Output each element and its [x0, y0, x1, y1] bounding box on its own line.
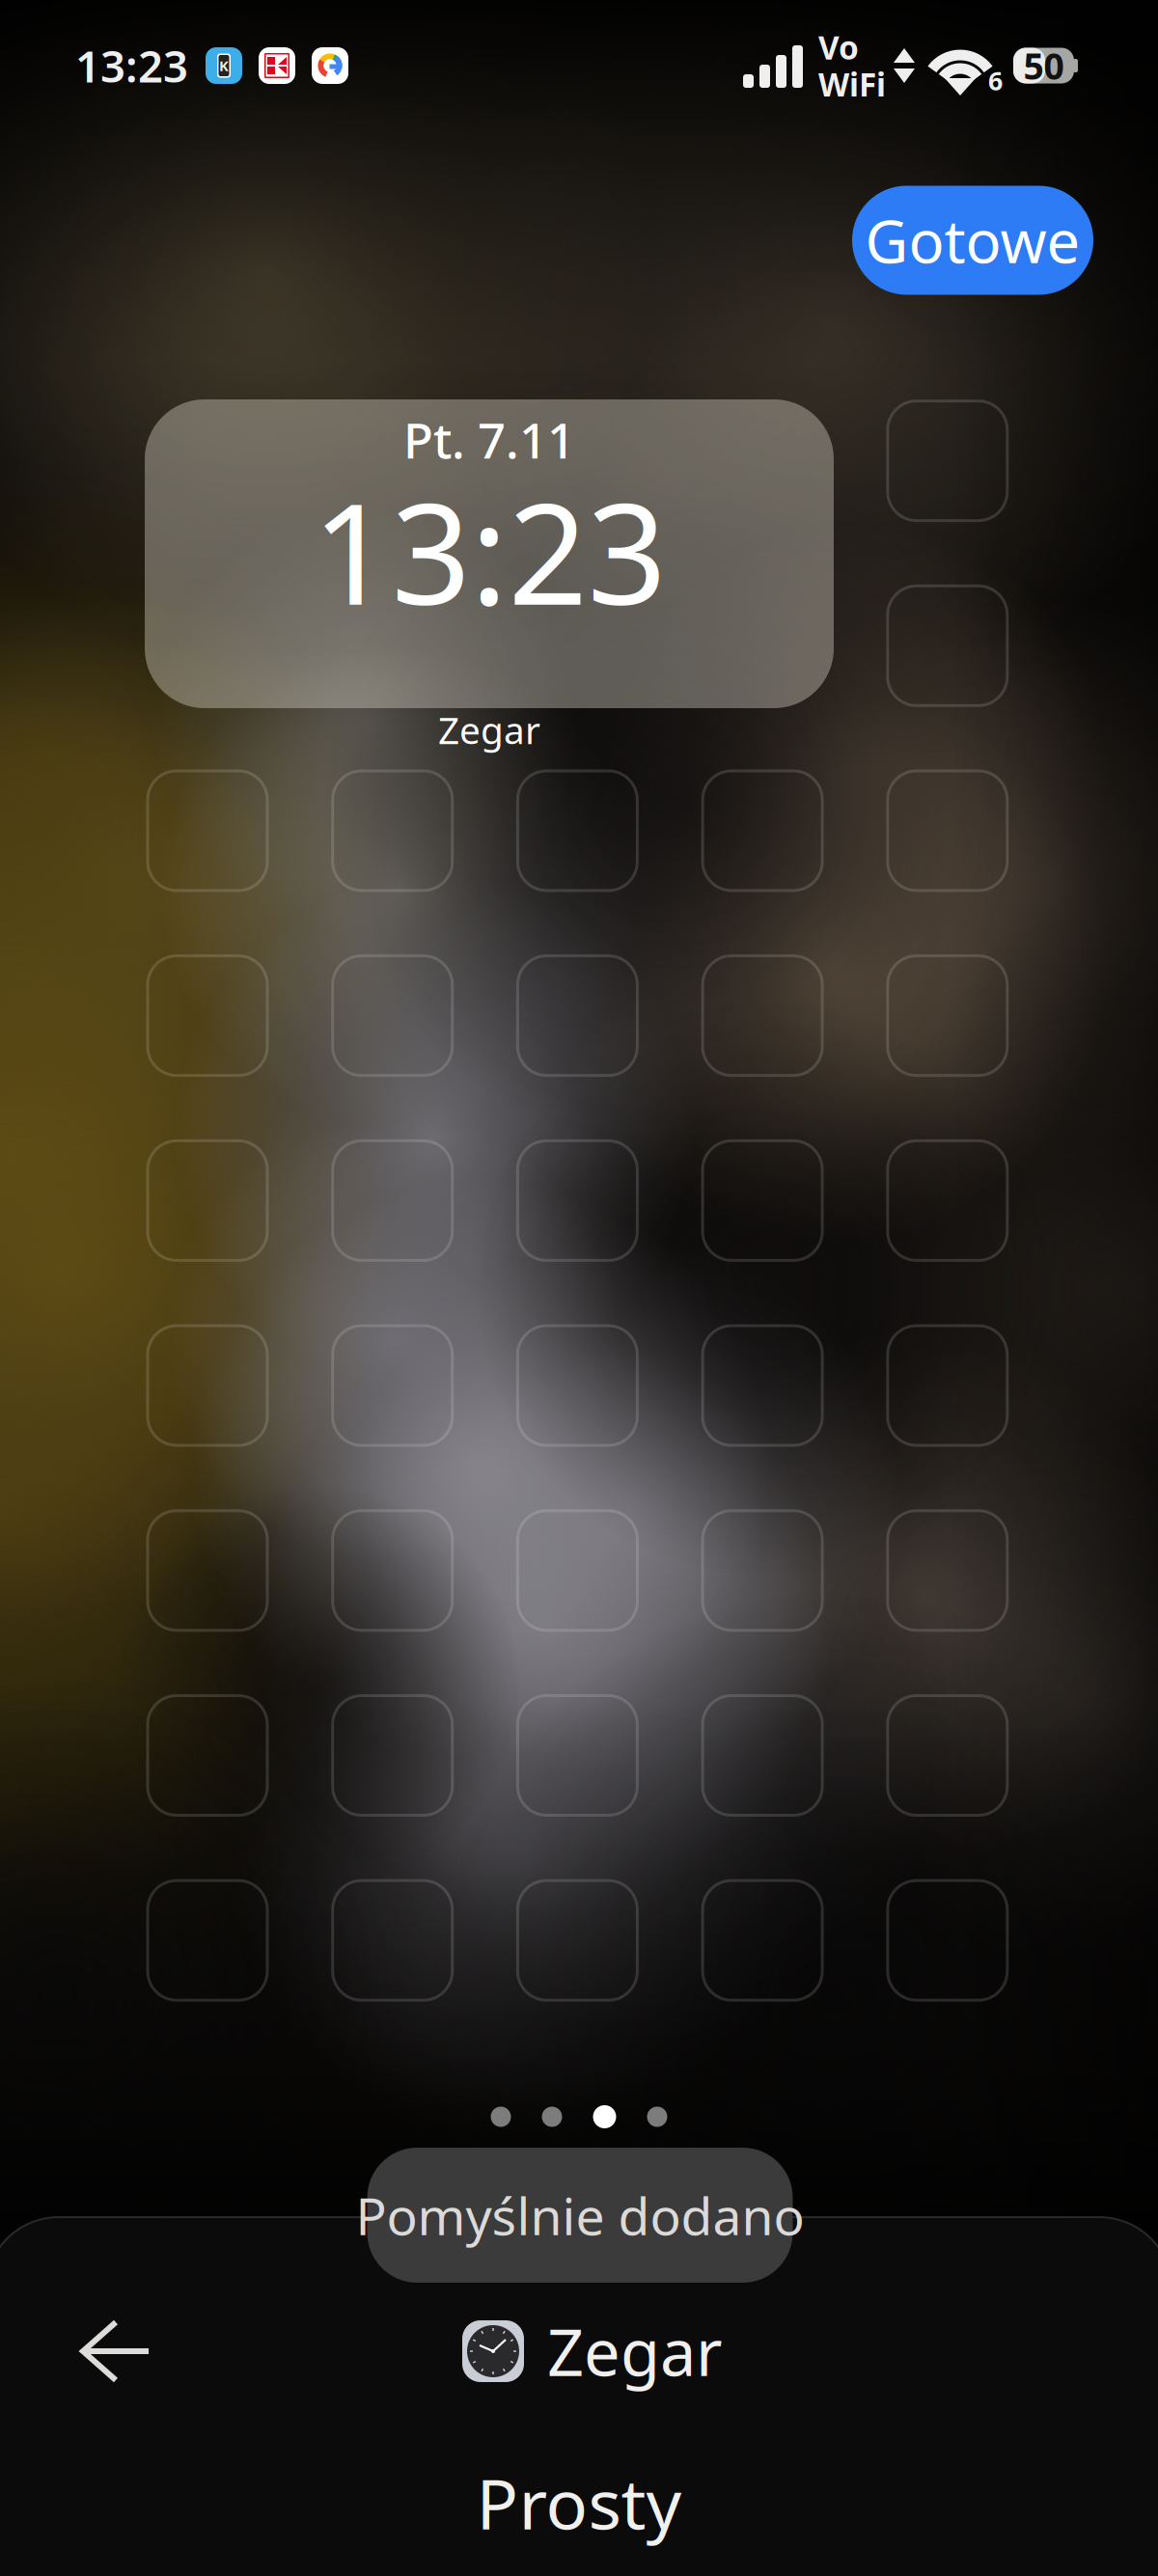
staticText: Vo: [818, 26, 859, 69]
button[interactable]: Gotowe: [852, 186, 1093, 295]
staticText: WiFi: [818, 63, 886, 105]
staticText: Zegar: [438, 705, 540, 754]
staticText: Pomyślnie dodano: [356, 2181, 804, 2249]
staticText: K: [219, 56, 229, 75]
button[interactable]: Wstecz: [58, 2298, 174, 2404]
staticText: Gotowe: [865, 201, 1080, 280]
staticText: 50: [1023, 42, 1064, 90]
staticText: Pt. 7.11: [403, 407, 575, 472]
staticText: Prosty: [476, 2456, 682, 2549]
staticText: 6: [988, 63, 1003, 97]
staticText: 13:23: [75, 37, 188, 95]
staticText: Zegar: [547, 2308, 723, 2394]
staticText: 13:23: [312, 459, 666, 643]
